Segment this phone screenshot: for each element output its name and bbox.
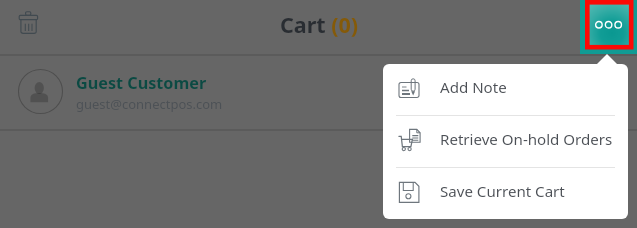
button[interactable]: Guest Customer [0, 54, 637, 129]
staticText: Guest Customer [76, 72, 207, 94]
staticText: Save Current Cart [440, 181, 565, 202]
button[interactable]: Retrieve On-hold Orders [383, 116, 628, 167]
button[interactable]: Save Current Cart [383, 168, 628, 219]
button[interactable]: More options [580, 0, 637, 54]
button[interactable]: Delete cart [12, 7, 44, 39]
button[interactable]: Add Note [383, 64, 628, 115]
staticText: Cart (0) [280, 10, 359, 39]
staticText: Add Note [440, 77, 507, 98]
staticText: Retrieve On-hold Orders [440, 129, 613, 150]
staticText: guest@connectpos.com [76, 95, 223, 113]
